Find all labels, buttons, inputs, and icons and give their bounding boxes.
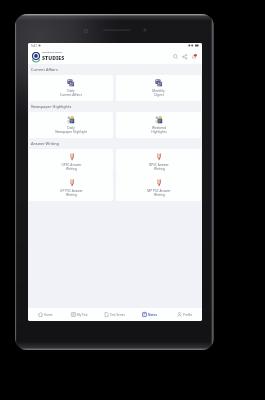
staticText: Writing: [66, 167, 77, 171]
staticText: Profile: [183, 313, 193, 317]
staticText: 9:41: [31, 44, 37, 48]
staticText: Home: [44, 313, 53, 317]
staticText: Notes: [148, 313, 157, 317]
staticText: MP PSC Answer: [147, 189, 171, 193]
staticText: STUDIES: [42, 54, 65, 61]
button[interactable]: Daily: [29, 112, 113, 138]
staticText: INTERNATIONAL: [42, 51, 63, 54]
staticText: Current Affairs: [60, 93, 82, 97]
staticText: Weekend: [152, 126, 166, 130]
button[interactable]: BPSC Answer: [116, 149, 201, 175]
staticText: Writing: [154, 167, 165, 171]
button[interactable]: UPSC Answer: [29, 149, 113, 175]
button[interactable]: UP PSC Answer: [29, 175, 113, 201]
staticText: Daily: [67, 89, 75, 93]
button[interactable]: Home: [28, 308, 62, 321]
button[interactable]: Monthly: [116, 75, 201, 101]
button[interactable]: My Test: [62, 308, 97, 321]
staticText: Newspaper Highlight: [55, 130, 87, 134]
staticText: UPSC Answer: [61, 163, 82, 167]
button[interactable]: Test Series: [97, 308, 132, 321]
staticText: Current Affairs: [31, 67, 58, 72]
staticText: BPSC Answer: [149, 163, 169, 167]
staticText: Answer Writing: [31, 141, 59, 146]
staticText: Test Series: [110, 313, 125, 317]
button[interactable]: Search: [171, 52, 180, 61]
staticText: Highlights: [151, 130, 167, 134]
staticText: Writing: [154, 193, 165, 197]
button[interactable]: Notes: [132, 308, 167, 321]
staticText: Writing: [66, 193, 77, 197]
staticText: Daily: [67, 126, 75, 130]
staticText: My Test: [77, 313, 88, 317]
staticText: Newspaper Highlights: [31, 104, 72, 109]
staticText: Digest: [154, 93, 164, 97]
button[interactable]: Profile: [167, 308, 202, 321]
button[interactable]: Notifications: [189, 52, 198, 61]
button[interactable]: Weekend: [116, 112, 201, 138]
button[interactable]: MP PSC Answer: [116, 175, 201, 201]
button[interactable]: Daily: [29, 75, 113, 101]
button[interactable]: Share: [180, 52, 189, 61]
staticText: UP PSC Answer: [60, 189, 83, 193]
staticText: Monthly: [152, 89, 165, 93]
